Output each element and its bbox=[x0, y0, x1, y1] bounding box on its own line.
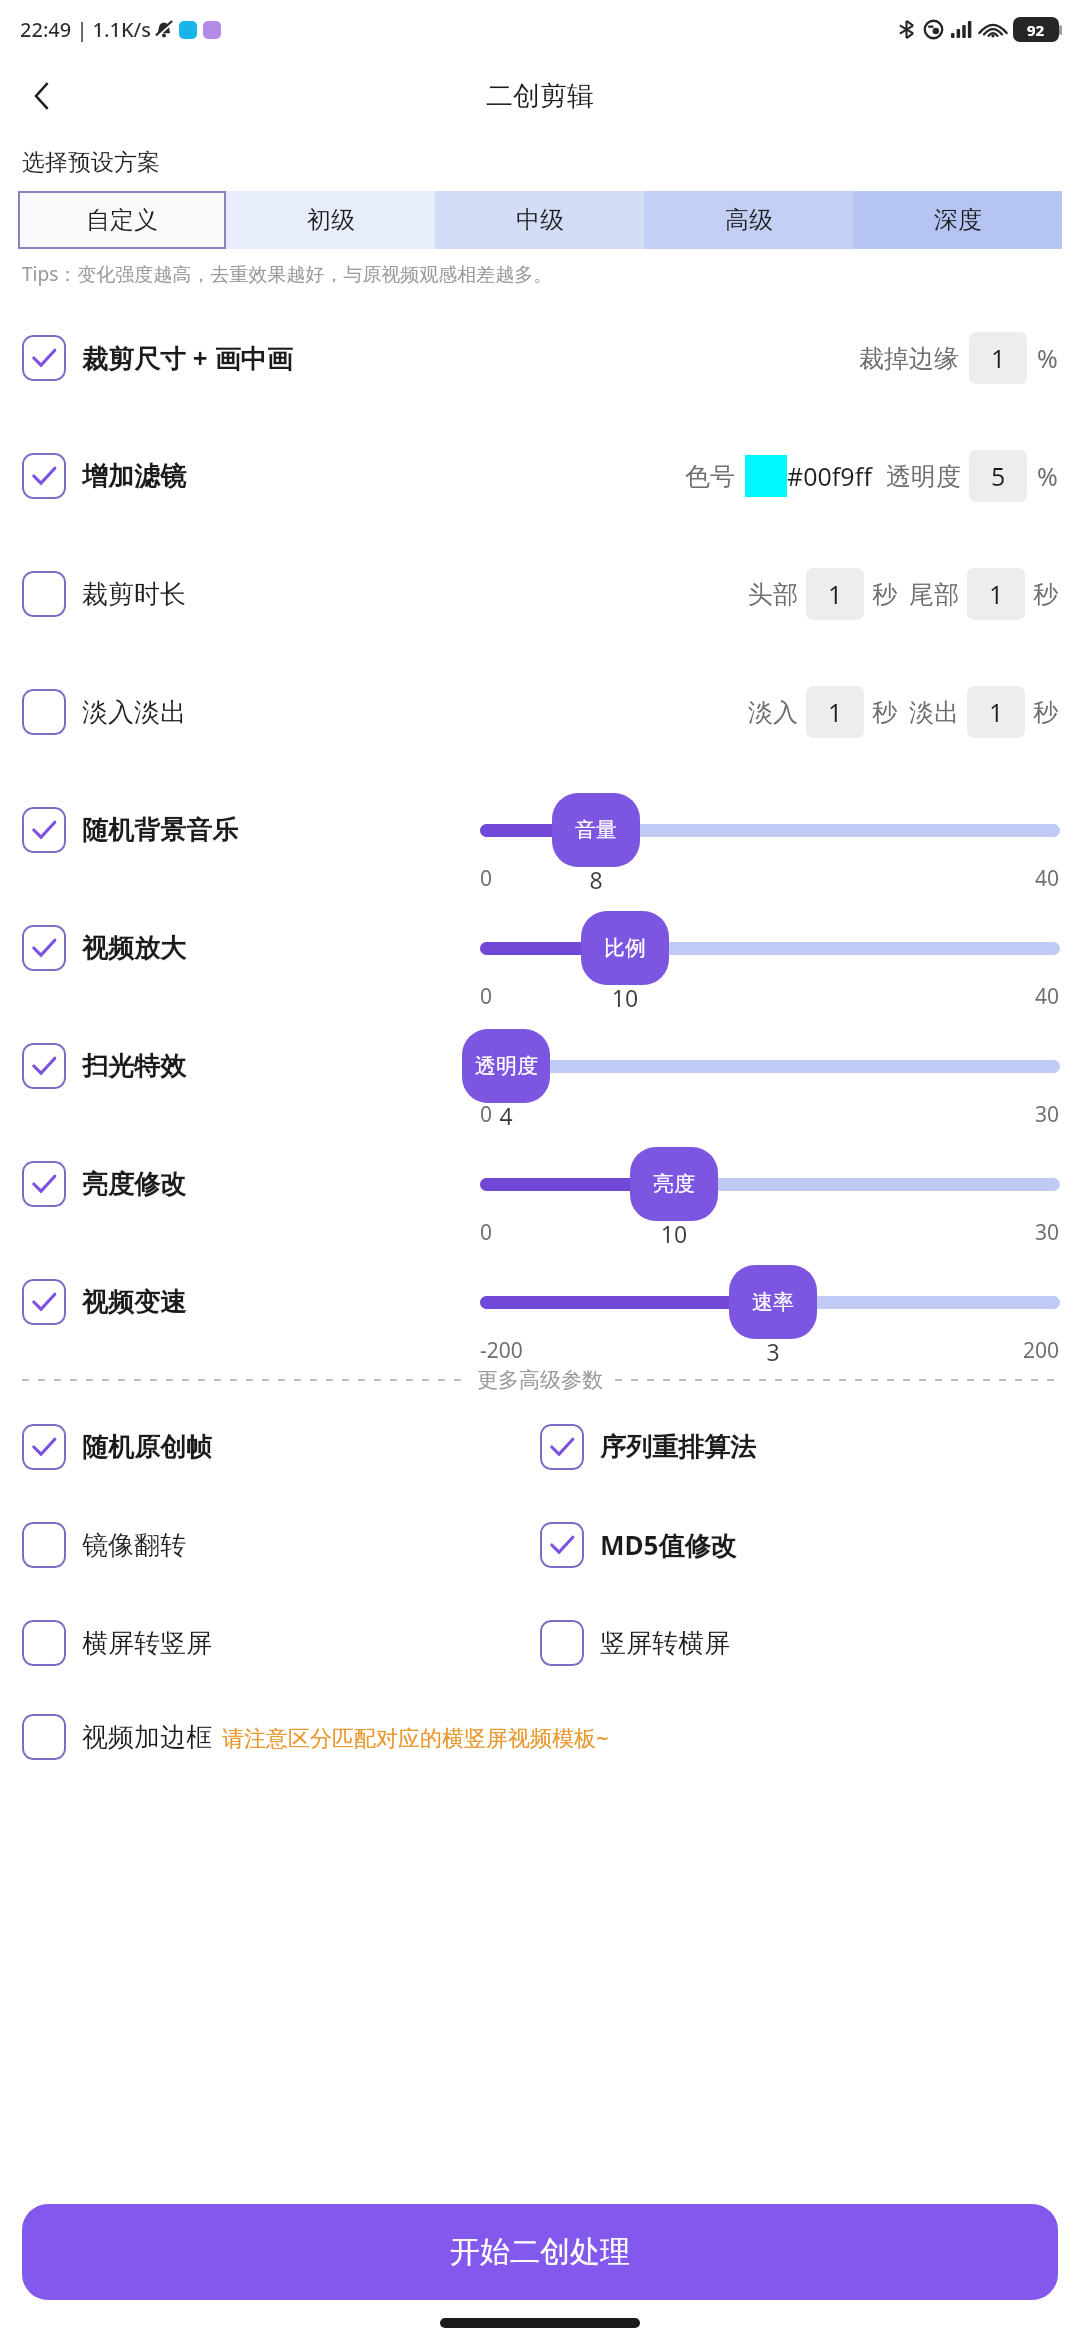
button[interactable]: Back bbox=[14, 68, 70, 124]
button[interactable]: 速率 bbox=[729, 1265, 817, 1339]
staticText: 镜像翻转 bbox=[82, 1529, 186, 1562]
button[interactable]: 深度 bbox=[853, 191, 1062, 249]
staticText: -200 bbox=[480, 1336, 523, 1365]
button[interactable]: 5 bbox=[969, 450, 1027, 502]
button[interactable]: 1 bbox=[806, 568, 864, 620]
staticText: 横屏转竖屏 bbox=[82, 1627, 212, 1660]
button[interactable]: 随机背景音乐 bbox=[22, 771, 1058, 889]
staticText: 1 bbox=[989, 695, 1004, 729]
button[interactable]: 1 bbox=[967, 568, 1025, 620]
staticText: 8 bbox=[552, 864, 640, 895]
staticText: Tips：变化强度越高，去重效果越好，与原视频观感相差越多。 bbox=[22, 261, 553, 287]
staticText: 视频加边框 bbox=[82, 1721, 212, 1754]
staticText: 视频放大 bbox=[82, 932, 186, 965]
button[interactable]: 横屏转竖屏 bbox=[22, 1603, 540, 1683]
staticText: 比例 bbox=[604, 935, 646, 961]
staticText: 40 bbox=[1035, 864, 1060, 893]
staticText: 10 bbox=[630, 1218, 718, 1249]
button[interactable]: 1 bbox=[969, 332, 1027, 384]
staticText: 随机原创帧 bbox=[82, 1431, 212, 1464]
staticText: 头部 bbox=[748, 579, 798, 610]
button[interactable]: 竖屏转横屏 bbox=[540, 1603, 1058, 1683]
staticText: 0 bbox=[480, 1100, 493, 1129]
button[interactable]: 裁剪时长 bbox=[22, 535, 1058, 653]
button[interactable]: 裁剪尺寸 + 画中画 bbox=[22, 299, 1058, 417]
staticText: 透明度 bbox=[886, 461, 961, 492]
staticText: 30 bbox=[1035, 1100, 1060, 1129]
staticText: 序列重排算法 bbox=[600, 1431, 756, 1464]
staticText: 中级 bbox=[516, 205, 564, 235]
staticText: 0 bbox=[480, 982, 493, 1011]
button[interactable]: 镜像翻转 bbox=[22, 1505, 540, 1585]
staticText: 1 bbox=[991, 341, 1006, 375]
staticText: 裁掉边缘 bbox=[859, 343, 959, 374]
button[interactable]: 1 bbox=[967, 686, 1025, 738]
staticText: 淡入淡出 bbox=[82, 696, 186, 729]
staticText: 亮度修改 bbox=[82, 1168, 186, 1201]
staticText: 速率 bbox=[752, 1289, 794, 1315]
staticText: 0 bbox=[480, 1218, 493, 1247]
staticText: 0 bbox=[480, 864, 493, 893]
button[interactable]: 中级 bbox=[435, 191, 644, 249]
staticText: 竖屏转横屏 bbox=[600, 1627, 730, 1660]
staticText: 10 bbox=[581, 982, 669, 1013]
staticText: 开始二创处理 bbox=[450, 2233, 630, 2271]
staticText: 3 bbox=[729, 1336, 817, 1367]
staticText: 92 bbox=[1027, 20, 1045, 40]
button[interactable]: 音量 bbox=[552, 793, 640, 867]
staticText: 高级 bbox=[725, 205, 773, 235]
staticText: 30 bbox=[1035, 1218, 1060, 1247]
staticText: 淡入 bbox=[748, 697, 798, 728]
staticText: #00f9ff bbox=[787, 459, 872, 493]
staticText: 透明度 bbox=[475, 1053, 538, 1079]
staticText: 淡出 bbox=[909, 697, 959, 728]
staticText: 4 bbox=[462, 1100, 550, 1131]
button[interactable]: 透明度 bbox=[462, 1029, 550, 1103]
staticText: 22:49 | 1.1K/s bbox=[20, 16, 151, 43]
button[interactable]: 淡入淡出 bbox=[22, 653, 1058, 771]
button[interactable]: 开始二创处理 bbox=[22, 2204, 1058, 2300]
staticText: 秒 bbox=[872, 697, 897, 728]
staticText: 增加滤镜 bbox=[82, 460, 186, 493]
staticText: 更多高级参数 bbox=[477, 1367, 603, 1393]
button[interactable]: 亮度 bbox=[630, 1147, 718, 1221]
staticText: 秒 bbox=[1033, 697, 1058, 728]
staticText: 1 bbox=[989, 577, 1004, 611]
staticText: 秒 bbox=[872, 579, 897, 610]
button[interactable]: 比例 bbox=[581, 911, 669, 985]
staticText: 1 bbox=[828, 577, 843, 611]
staticText: 5 bbox=[991, 459, 1006, 493]
staticText: % bbox=[1037, 459, 1058, 493]
staticText: 请注意区分匹配对应的横竖屏视频模板~ bbox=[222, 1722, 609, 1752]
button[interactable]: 序列重排算法 bbox=[540, 1407, 1058, 1487]
button[interactable]: 视频变速 bbox=[22, 1243, 1058, 1361]
staticText: 200 bbox=[1023, 1336, 1060, 1365]
button[interactable]: 视频加边框 bbox=[22, 1689, 1058, 1785]
button[interactable]: 视频放大 bbox=[22, 889, 1058, 1007]
staticText: MD5值修改 bbox=[600, 1527, 737, 1563]
button[interactable]: 初级 bbox=[226, 191, 435, 249]
staticText: 裁剪时长 bbox=[82, 578, 186, 611]
staticText: 音量 bbox=[575, 817, 617, 843]
button[interactable]: 扫光特效 bbox=[22, 1007, 1058, 1125]
staticText: 扫光特效 bbox=[82, 1050, 186, 1083]
staticText: 色号 bbox=[685, 461, 735, 492]
staticText: 40 bbox=[1035, 982, 1060, 1011]
staticText: 亮度 bbox=[653, 1171, 695, 1197]
button[interactable]: 亮度修改 bbox=[22, 1125, 1058, 1243]
button[interactable]: 随机原创帧 bbox=[22, 1407, 540, 1487]
button[interactable]: 1 bbox=[806, 686, 864, 738]
staticText: 秒 bbox=[1033, 579, 1058, 610]
button[interactable]: MD5值修改 bbox=[540, 1505, 1058, 1585]
staticText: 随机背景音乐 bbox=[82, 814, 238, 847]
button[interactable]: 自定义 bbox=[18, 191, 226, 249]
staticText: 尾部 bbox=[909, 579, 959, 610]
staticText: 二创剪辑 bbox=[486, 79, 594, 113]
button[interactable]: 高级 bbox=[644, 191, 853, 249]
staticText: 视频变速 bbox=[82, 1286, 186, 1319]
staticText: 选择预设方案 bbox=[22, 148, 160, 177]
button[interactable]: 增加滤镜 bbox=[22, 417, 1058, 535]
staticText: 深度 bbox=[934, 205, 982, 235]
staticText: 自定义 bbox=[86, 205, 158, 235]
